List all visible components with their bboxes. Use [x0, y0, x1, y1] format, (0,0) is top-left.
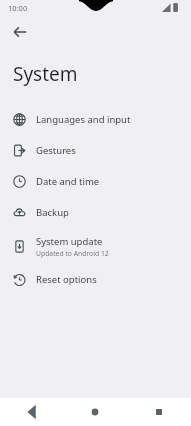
button[interactable]: Recents [127, 398, 191, 426]
button[interactable]: Reset options [0, 264, 191, 295]
button[interactable]: Home [63, 398, 127, 426]
staticText: Date and time [36, 175, 100, 188]
staticText: 10:00 [8, 3, 28, 13]
button[interactable]: Languages and input [0, 104, 191, 135]
button[interactable]: Back [0, 398, 63, 426]
button[interactable]: Backup [0, 197, 191, 228]
staticText: System update [36, 235, 103, 248]
staticText: Updated to Android 12 [36, 249, 109, 258]
staticText: Backup [36, 206, 69, 219]
button[interactable]: Date and time [0, 166, 191, 197]
button[interactable]: System update [0, 228, 191, 264]
staticText: Reset options [36, 273, 97, 286]
staticText: Languages and input [36, 113, 131, 126]
button[interactable]: Back [6, 18, 34, 46]
staticText: Gestures [36, 144, 76, 157]
staticText: System [13, 61, 78, 87]
button[interactable]: Gestures [0, 135, 191, 166]
